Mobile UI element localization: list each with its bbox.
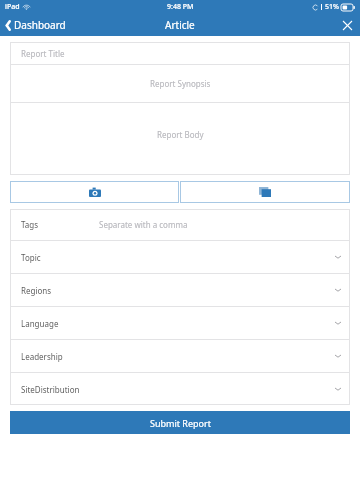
button[interactable]: Submit Report bbox=[10, 411, 350, 434]
button[interactable]: Dashboard bbox=[0, 14, 74, 36]
staticText: Report Body bbox=[157, 129, 204, 140]
staticText: Submit Report bbox=[150, 417, 211, 429]
button[interactable]: Report Synopsis bbox=[10, 65, 350, 102]
staticText: Report Title bbox=[21, 48, 65, 59]
button[interactable]: Close bbox=[335, 14, 360, 36]
button[interactable]: Regions bbox=[10, 274, 350, 306]
staticText: Topic bbox=[21, 252, 335, 263]
staticText: Language bbox=[21, 318, 335, 329]
staticText: iPad bbox=[5, 2, 20, 12]
button[interactable]: Take photo bbox=[10, 181, 179, 203]
button[interactable]: Topic bbox=[10, 241, 350, 273]
staticText: Tags bbox=[21, 219, 39, 230]
staticText: Separate with a comma bbox=[99, 219, 188, 230]
staticText: 51% bbox=[325, 2, 339, 12]
button[interactable]: Language bbox=[10, 307, 350, 339]
button[interactable]: SiteDistribution bbox=[10, 373, 350, 405]
button[interactable]: Report Body bbox=[10, 103, 350, 175]
staticText: 9:48 PM bbox=[167, 2, 194, 12]
staticText: SiteDistribution bbox=[21, 384, 335, 395]
staticText: Article bbox=[165, 18, 195, 32]
staticText: Leadership bbox=[21, 351, 335, 362]
button[interactable]: Report Title bbox=[10, 42, 350, 64]
staticText: Regions bbox=[21, 285, 335, 296]
button[interactable]: Choose from library bbox=[180, 181, 350, 203]
button[interactable]: Leadership bbox=[10, 340, 350, 372]
button[interactable]: Tags bbox=[10, 209, 350, 240]
staticText: Dashboard bbox=[14, 18, 66, 32]
staticText: Report Synopsis bbox=[150, 78, 211, 89]
